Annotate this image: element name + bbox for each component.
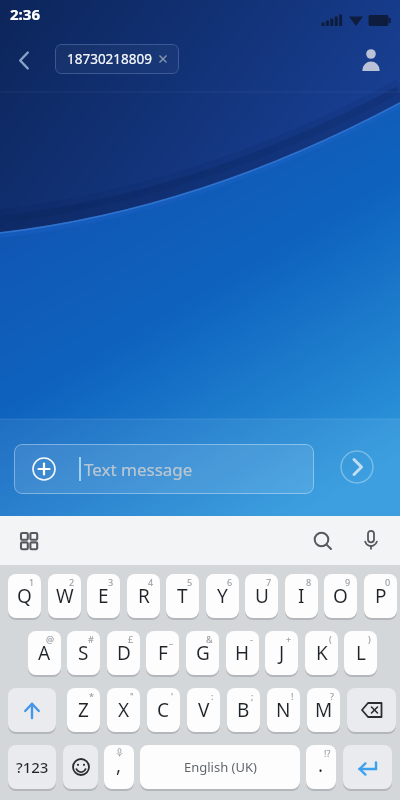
button[interactable] <box>350 38 392 82</box>
button[interactable]: S <box>67 631 100 675</box>
button[interactable]: C <box>147 688 180 732</box>
button[interactable]: Q <box>8 574 41 618</box>
button[interactable]: X <box>107 688 140 732</box>
staticText: ! <box>291 690 294 702</box>
button[interactable]: M <box>307 688 340 732</box>
staticText: # <box>88 633 94 645</box>
button[interactable]: J <box>265 631 298 675</box>
staticText: - <box>250 633 253 645</box>
staticText: U <box>255 583 269 609</box>
button[interactable] <box>12 524 46 558</box>
staticText: 2 <box>69 576 75 588</box>
button[interactable]: U <box>245 574 278 618</box>
staticText: Z <box>78 697 89 723</box>
staticText: 1 <box>29 576 35 588</box>
button[interactable]: B <box>227 688 260 732</box>
staticText: R <box>138 583 150 609</box>
staticText: J <box>279 640 285 666</box>
button[interactable]: English (UK) <box>140 745 300 789</box>
button[interactable]: . <box>306 745 336 789</box>
staticText: 9 <box>345 576 351 588</box>
button[interactable]: D <box>107 631 140 675</box>
staticText: H <box>235 640 250 666</box>
staticText: ? <box>330 690 334 702</box>
staticText: F <box>158 640 168 666</box>
staticText: A <box>38 640 51 666</box>
staticText: & <box>206 633 213 645</box>
button[interactable]: Y <box>206 574 239 618</box>
staticText: English (UK) <box>184 758 257 776</box>
staticText: W <box>56 583 74 609</box>
staticText: @ <box>46 633 55 645</box>
button[interactable]: V <box>187 688 220 732</box>
staticText: O <box>333 583 348 609</box>
staticText: E <box>98 583 109 609</box>
staticText: 0 <box>385 576 391 588</box>
staticText: _ <box>169 633 173 645</box>
staticText: K <box>316 640 328 666</box>
staticText: . <box>318 752 324 778</box>
staticText: Q <box>17 583 32 609</box>
staticText: D <box>117 640 131 666</box>
button[interactable] <box>8 688 56 732</box>
staticText: N <box>276 697 291 723</box>
staticText: , <box>116 752 122 778</box>
button[interactable]: O <box>324 574 357 618</box>
staticText: ( <box>329 633 332 645</box>
staticText: * <box>89 690 94 702</box>
button[interactable]: E <box>87 574 120 618</box>
staticText: 3 <box>108 576 114 588</box>
staticText: X <box>118 697 130 723</box>
button[interactable]: A <box>28 631 61 675</box>
staticText: 5 <box>187 576 193 588</box>
staticText: 18730218809 <box>67 50 152 68</box>
button[interactable] <box>343 745 392 789</box>
staticText: I <box>298 583 305 609</box>
button[interactable]: 18730218809 <box>55 44 179 74</box>
staticText: B <box>237 697 250 723</box>
button[interactable] <box>347 688 396 732</box>
staticText: ; <box>251 690 254 702</box>
staticText: V <box>198 697 210 723</box>
button[interactable]: L <box>344 631 377 675</box>
staticText: ) <box>368 633 371 645</box>
button[interactable] <box>340 450 374 484</box>
staticText: 2:36 <box>10 4 40 24</box>
button[interactable]: R <box>127 574 160 618</box>
staticText: L <box>356 640 366 666</box>
button[interactable]: H <box>226 631 259 675</box>
button[interactable] <box>354 524 388 558</box>
staticText: : <box>211 690 214 702</box>
staticText: Text message <box>84 458 193 481</box>
button[interactable] <box>63 745 98 789</box>
button[interactable]: F <box>146 631 179 675</box>
staticText: 7 <box>266 576 272 588</box>
button[interactable]: , <box>104 745 134 789</box>
staticText: + <box>286 633 292 645</box>
staticText: S <box>78 640 89 666</box>
button[interactable]: Z <box>67 688 100 732</box>
button[interactable]: W <box>48 574 81 618</box>
button[interactable]: K <box>305 631 338 675</box>
button[interactable]: I <box>285 574 318 618</box>
staticText: £ <box>128 633 134 645</box>
button[interactable]: ?123 <box>8 745 56 789</box>
staticText: G <box>196 640 210 666</box>
button[interactable]: Text message <box>14 444 314 494</box>
staticText: !? <box>324 747 331 759</box>
button[interactable]: G <box>186 631 219 675</box>
button[interactable] <box>306 524 340 558</box>
staticText: " <box>130 690 134 702</box>
staticText: M <box>315 697 333 723</box>
staticText: ' <box>171 690 174 702</box>
staticText: P <box>375 583 387 609</box>
staticText: C <box>157 697 170 723</box>
button[interactable] <box>4 40 44 80</box>
button[interactable]: T <box>166 574 199 618</box>
staticText: 4 <box>148 576 154 588</box>
staticText: ?123 <box>16 757 49 777</box>
staticText: 6 <box>227 576 233 588</box>
button[interactable]: P <box>364 574 397 618</box>
button[interactable]: N <box>267 688 300 732</box>
staticText: 8 <box>306 576 312 588</box>
